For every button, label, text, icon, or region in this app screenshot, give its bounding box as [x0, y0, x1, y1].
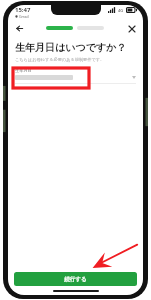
staticText: こちらはお尋ねする必要のある規制要件です。: [15, 57, 105, 62]
staticText: 4G: [118, 8, 124, 13]
staticText: Gmail: [19, 14, 29, 19]
button[interactable]: Close: [125, 22, 138, 35]
staticText: 15:47: [15, 6, 31, 14]
staticText: 生年月日: [15, 68, 32, 73]
staticText: 続行する: [64, 276, 87, 283]
button[interactable]: 続行する: [14, 272, 137, 286]
staticText: 生年月日はいつですか？: [15, 41, 127, 54]
button[interactable]: Back: [13, 22, 26, 35]
button[interactable]: 生年月日: [15, 68, 136, 84]
